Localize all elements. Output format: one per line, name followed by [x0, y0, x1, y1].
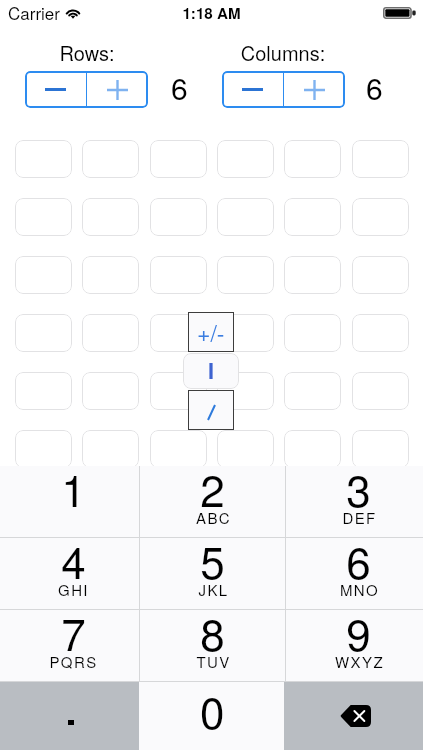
button[interactable]: 3: [286, 466, 423, 537]
button[interactable]: 5: [140, 538, 285, 609]
button[interactable]: Cell 4-2: [82, 314, 139, 352]
button[interactable]: Cell 2-1: [15, 198, 72, 236]
button[interactable]: 8: [140, 610, 285, 681]
staticText: WXYZ: [291, 651, 423, 672]
button[interactable]: Decrease Columns: [222, 71, 283, 108]
button[interactable]: Cell 1-3: [150, 140, 207, 178]
staticText: 6: [290, 528, 423, 591]
button[interactable]: Cell 4-6: [352, 314, 409, 352]
staticText: 1:18 AM: [0, 2, 423, 24]
staticText: DEF: [291, 507, 423, 528]
staticText: 2: [140, 456, 285, 519]
button[interactable]: Decrease Rows: [25, 71, 86, 108]
staticText: GHI: [4, 579, 143, 600]
button[interactable]: Cell 6-4: [217, 430, 274, 468]
button[interactable]: Cell 4-5: [284, 314, 341, 352]
button[interactable]: Decimal point: [0, 682, 139, 750]
staticText: JKL: [141, 579, 286, 600]
staticText: 6: [171, 66, 188, 109]
button[interactable]: Cell 5-5: [284, 372, 341, 410]
button[interactable]: [183, 353, 239, 389]
staticText: 8: [140, 600, 285, 663]
button[interactable]: Cell 6-2: [82, 430, 139, 468]
button[interactable]: Cell 4-3: [150, 314, 207, 352]
staticText: Carrier: [8, 0, 60, 24]
button[interactable]: Increase Rows: [87, 71, 148, 108]
staticText: 9: [290, 600, 423, 663]
button[interactable]: Cell 2-3: [150, 198, 207, 236]
button[interactable]: Cell 3-5: [284, 256, 341, 294]
button[interactable]: [188, 390, 234, 430]
staticText: 4: [4, 528, 143, 591]
staticText: 1: [4, 456, 143, 519]
staticText: 0: [200, 678, 225, 741]
staticText: 5: [140, 528, 285, 591]
button[interactable]: Cell 1-4: [217, 140, 274, 178]
staticText: TUV: [141, 651, 286, 672]
button[interactable]: Cell 6-6: [352, 430, 409, 468]
staticText: MNO: [291, 579, 423, 600]
button[interactable]: Cell 1-6: [352, 140, 409, 178]
button[interactable]: Delete: [284, 682, 423, 750]
button[interactable]: 7: [0, 610, 139, 681]
button[interactable]: Cell 1-2: [82, 140, 139, 178]
button[interactable]: 2: [140, 466, 285, 537]
button[interactable]: Increase Columns: [284, 71, 345, 108]
button[interactable]: Cell 4-4: [217, 314, 274, 352]
button[interactable]: Cell 3-6: [352, 256, 409, 294]
button[interactable]: Cell 1-5: [284, 140, 341, 178]
staticText: ABC: [141, 507, 286, 528]
button[interactable]: Cell 2-2: [82, 198, 139, 236]
button[interactable]: Cell 4-1: [15, 314, 72, 352]
staticText: 7: [4, 600, 143, 663]
button[interactable]: 9: [286, 610, 423, 681]
staticText: Rows:: [0, 38, 177, 67]
button[interactable]: Cell 5-1: [15, 372, 72, 410]
button[interactable]: Cell 3-1: [15, 256, 72, 294]
button[interactable]: Cell 5-2: [82, 372, 139, 410]
button[interactable]: Cell 2-5: [284, 198, 341, 236]
button[interactable]: Cell 6-3: [150, 430, 207, 468]
staticText: [4, 507, 143, 528]
button[interactable]: Cell 3-4: [217, 256, 274, 294]
button[interactable]: Cell 6-1: [15, 430, 72, 468]
button[interactable]: 4: [0, 538, 139, 609]
button[interactable]: 6: [286, 538, 423, 609]
button[interactable]: +/-: [188, 312, 234, 352]
button[interactable]: Cell 3-3: [150, 256, 207, 294]
button[interactable]: Cell 5-4: [217, 372, 274, 410]
button[interactable]: Cell 1-1: [15, 140, 72, 178]
button[interactable]: Cell 6-5: [284, 430, 341, 468]
button[interactable]: Cell 3-2: [82, 256, 139, 294]
button[interactable]: Cell 5-3: [150, 372, 207, 410]
button[interactable]: 1: [0, 466, 139, 537]
staticText: +/-: [197, 316, 225, 349]
button[interactable]: Cell 5-6: [352, 372, 409, 410]
staticText: PQRS: [4, 651, 143, 672]
button[interactable]: Cell 2-6: [352, 198, 409, 236]
button[interactable]: 0: [139, 682, 284, 750]
staticText: 6: [366, 66, 383, 109]
staticText: Columns:: [193, 38, 373, 67]
staticText: 3: [290, 456, 423, 519]
button[interactable]: Cell 2-4: [217, 198, 274, 236]
